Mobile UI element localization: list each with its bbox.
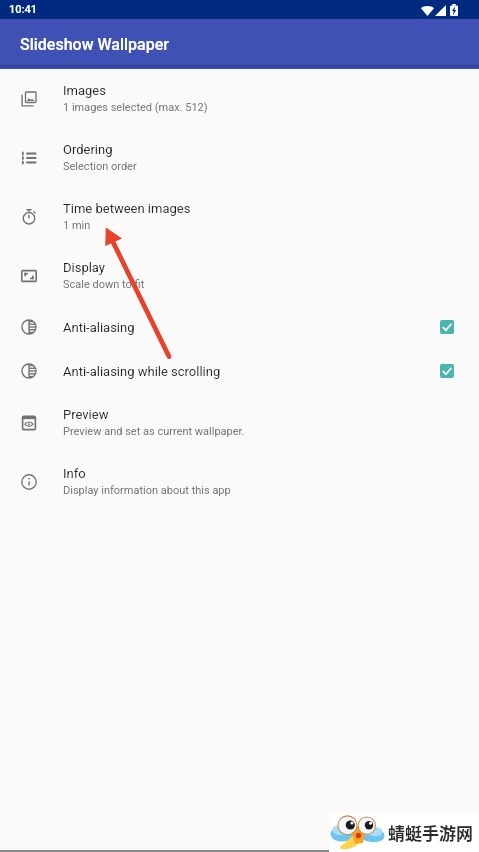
button[interactable]: Ordering [0, 128, 479, 187]
staticText: Display information about this app [63, 484, 231, 497]
button[interactable]: Preview [0, 393, 479, 452]
staticText: 蜻蜓手游网 [388, 820, 473, 845]
staticText: 1 min [63, 219, 91, 232]
other: Toggle Anti-aliasing [440, 320, 454, 334]
button[interactable]: Info [0, 452, 479, 511]
staticText: Info [63, 466, 86, 481]
button[interactable]: Time between images [0, 187, 479, 246]
button[interactable]: Slideshow Wallpaper [0, 19, 479, 69]
staticText: Preview [63, 407, 109, 422]
staticText: Scale down to fit [63, 278, 145, 291]
staticText: Images [63, 83, 106, 98]
staticText: Selection order [63, 160, 137, 173]
button[interactable]: Anti-aliasing while scrolling [0, 349, 479, 393]
staticText: 1 images selected (max. 512) [63, 101, 208, 114]
staticText: Display [63, 260, 105, 275]
staticText: Anti-aliasing while scrolling [63, 364, 221, 379]
staticText: Preview and set as current wallpaper. [63, 425, 245, 438]
staticText: Slideshow Wallpaper [20, 35, 169, 54]
staticText: Anti-aliasing [63, 320, 135, 335]
other: Toggle Anti-aliasing while scrolling [440, 364, 454, 378]
button[interactable]: Display [0, 246, 479, 305]
button[interactable]: Images [0, 69, 479, 128]
staticText: Time between images [63, 201, 191, 216]
staticText: 10:41 [9, 3, 37, 16]
button[interactable]: Anti-aliasing [0, 305, 479, 349]
staticText: Ordering [63, 142, 113, 157]
